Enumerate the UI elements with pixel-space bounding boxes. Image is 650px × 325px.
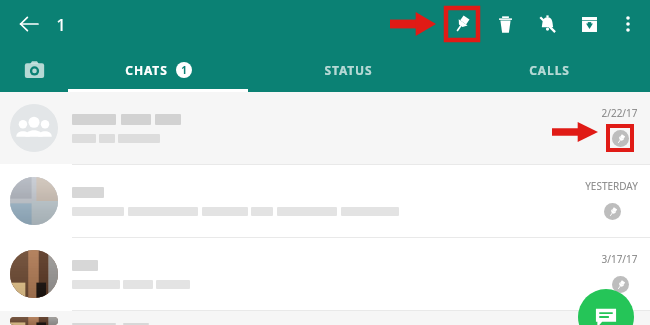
- button[interactable]: Pin: [446, 8, 478, 40]
- button[interactable]: More options: [616, 12, 640, 36]
- staticText: YESTERDAY: [585, 179, 638, 193]
- button[interactable]: Delete: [492, 11, 518, 37]
- button[interactable]: [0, 311, 650, 325]
- button[interactable]: Archive: [576, 11, 602, 37]
- staticText: CALLS: [529, 62, 570, 78]
- other: Pinned: [600, 199, 624, 223]
- staticText: CHATS: [125, 62, 168, 78]
- button[interactable]: CALLS: [449, 48, 650, 92]
- button[interactable]: 3/17/17: [0, 238, 650, 310]
- other: Pinned: [608, 126, 632, 150]
- button[interactable]: New chat: [578, 289, 634, 325]
- other: Pinned: [608, 272, 632, 296]
- staticText: 3/17/17: [601, 252, 638, 266]
- button[interactable]: Mute: [534, 11, 560, 37]
- staticText: 1: [181, 63, 187, 77]
- staticText: STATUS: [324, 62, 373, 78]
- staticText: 1: [56, 13, 66, 36]
- button[interactable]: YESTERDAY: [0, 165, 650, 237]
- button[interactable]: Camera: [0, 48, 68, 92]
- button[interactable]: 2/22/17: [0, 92, 650, 164]
- staticText: 2/22/17: [601, 106, 638, 120]
- button[interactable]: Back: [14, 9, 44, 39]
- button[interactable]: CHATS: [68, 48, 248, 92]
- button[interactable]: STATUS: [248, 48, 449, 92]
